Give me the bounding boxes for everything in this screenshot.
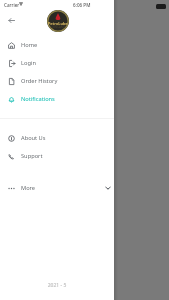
staticText: Login xyxy=(21,59,36,67)
button[interactable]: Logo xyxy=(47,10,69,32)
button[interactable]: Support xyxy=(0,149,114,163)
staticText: About Us xyxy=(21,134,46,142)
staticText: Support xyxy=(21,152,43,160)
staticText: More xyxy=(21,184,36,192)
button[interactable]: More xyxy=(0,181,114,195)
staticText: Carrier xyxy=(4,2,20,8)
staticText: LUBRICANTS xyxy=(50,25,66,29)
staticText: Notifications xyxy=(21,95,55,103)
button[interactable]: Notifications xyxy=(0,92,114,106)
button[interactable]: Home xyxy=(0,38,114,52)
button[interactable]: Back xyxy=(4,13,20,29)
staticText: Home xyxy=(21,41,38,49)
staticText: PetroLube xyxy=(48,21,68,26)
button[interactable]: Order History xyxy=(0,74,114,88)
button[interactable]: Login xyxy=(0,56,114,70)
button[interactable]: About Us xyxy=(0,131,114,145)
staticText: Order History xyxy=(21,77,58,85)
staticText: 6:06 PM xyxy=(73,2,91,8)
staticText: 2021 - 5 xyxy=(0,282,114,289)
